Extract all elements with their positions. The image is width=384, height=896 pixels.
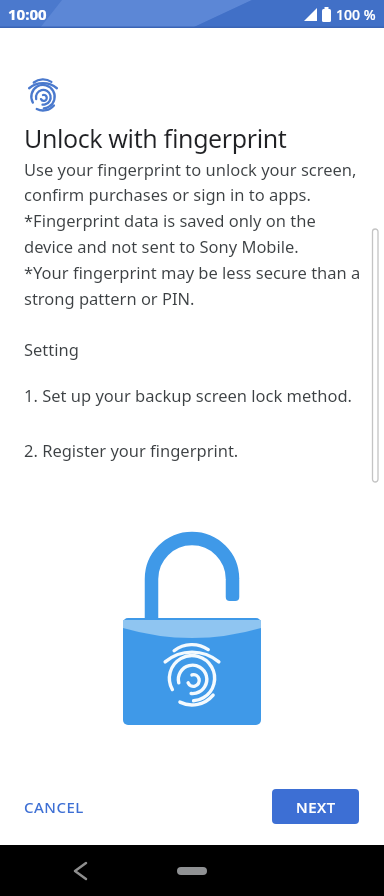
staticText: Unlock with fingerprint xyxy=(24,121,287,155)
staticText: Use your fingerprint to unlock your scre… xyxy=(24,158,361,310)
staticText: 100 % xyxy=(336,5,376,24)
button[interactable] xyxy=(177,867,207,875)
button[interactable] xyxy=(66,857,94,885)
staticText: NEXT xyxy=(296,797,336,817)
staticText: Setting xyxy=(24,338,79,360)
button[interactable]: CANCEL xyxy=(24,789,84,824)
staticText: 10:00 xyxy=(8,4,47,24)
staticText: CANCEL xyxy=(24,797,84,817)
button[interactable]: NEXT xyxy=(272,789,359,824)
staticText: 1. Set up your backup screen lock method… xyxy=(24,384,352,406)
staticText: 2. Register your fingerprint. xyxy=(24,439,239,461)
